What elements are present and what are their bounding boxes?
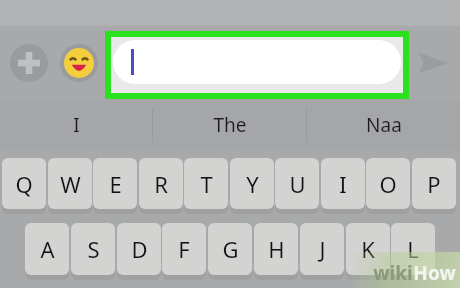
button[interactable]: R bbox=[139, 158, 183, 212]
staticText: How bbox=[413, 260, 456, 286]
button[interactable]: H bbox=[254, 223, 298, 278]
staticText: F bbox=[178, 234, 190, 264]
staticText: K bbox=[361, 234, 375, 264]
staticText: L bbox=[407, 234, 419, 264]
button[interactable]: I bbox=[321, 158, 365, 212]
staticText: W bbox=[60, 169, 81, 199]
button[interactable]: K bbox=[346, 223, 390, 278]
staticText: R bbox=[154, 169, 168, 199]
button[interactable]: U bbox=[275, 158, 319, 212]
button[interactable]: S bbox=[71, 223, 115, 278]
button[interactable]: G bbox=[208, 223, 252, 278]
button[interactable]: J bbox=[300, 223, 344, 278]
button[interactable]: I bbox=[0, 100, 152, 150]
staticText: wiki bbox=[373, 260, 413, 286]
staticText: T bbox=[200, 169, 213, 199]
staticText: I bbox=[73, 112, 80, 138]
staticText: Q bbox=[15, 169, 33, 199]
button[interactable]: D bbox=[117, 223, 161, 278]
button[interactable]: A bbox=[25, 223, 69, 278]
staticText: E bbox=[109, 169, 122, 199]
staticText: O bbox=[379, 169, 397, 199]
button[interactable]: O bbox=[366, 158, 410, 212]
button[interactable]: P bbox=[412, 158, 456, 212]
button[interactable]: E bbox=[93, 158, 137, 212]
button[interactable]: Send bbox=[414, 44, 452, 82]
button[interactable] bbox=[111, 37, 403, 93]
staticText: G bbox=[222, 234, 239, 264]
staticText: I bbox=[339, 169, 347, 199]
button[interactable]: L bbox=[391, 223, 435, 278]
button[interactable]: Q bbox=[2, 158, 46, 212]
staticText: J bbox=[319, 234, 326, 264]
button[interactable]: Y bbox=[230, 158, 274, 212]
button[interactable]: The bbox=[153, 100, 306, 150]
button[interactable]: Naa bbox=[307, 100, 460, 150]
button[interactable]: T bbox=[184, 158, 228, 212]
staticText: The bbox=[213, 112, 247, 138]
staticText: U bbox=[289, 169, 306, 199]
button[interactable]: F bbox=[162, 223, 206, 278]
staticText: Y bbox=[246, 169, 259, 199]
button[interactable]: Emoji bbox=[60, 44, 98, 82]
staticText: P bbox=[427, 169, 441, 199]
staticText: A bbox=[40, 234, 55, 264]
button[interactable]: W bbox=[48, 158, 92, 212]
staticText: Naa bbox=[366, 112, 402, 138]
staticText: S bbox=[87, 234, 100, 264]
staticText: H bbox=[268, 234, 285, 264]
button[interactable]: Add attachment bbox=[10, 44, 48, 82]
staticText: D bbox=[131, 234, 148, 264]
